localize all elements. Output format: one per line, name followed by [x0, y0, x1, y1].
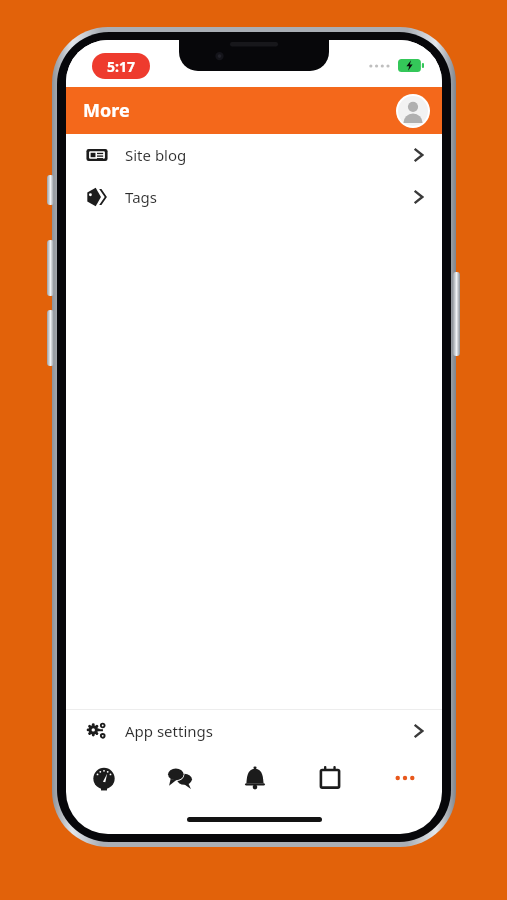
button[interactable]: Dashboard: [66, 752, 142, 804]
button[interactable]: Chat: [142, 752, 217, 804]
staticText: App settings: [125, 721, 213, 741]
button[interactable]: Calendar: [292, 752, 367, 804]
button[interactable]: Notifications: [217, 752, 292, 804]
button[interactable]: Site blog: [66, 134, 442, 176]
staticText: Tags: [125, 187, 157, 207]
staticText: Site blog: [125, 145, 187, 165]
button[interactable]: Tags: [66, 176, 442, 218]
button[interactable]: Account: [396, 94, 430, 128]
button[interactable]: App settings: [66, 710, 442, 752]
staticText: 5:17: [107, 57, 135, 76]
staticText: More: [83, 98, 130, 123]
button[interactable]: More: [367, 752, 442, 804]
